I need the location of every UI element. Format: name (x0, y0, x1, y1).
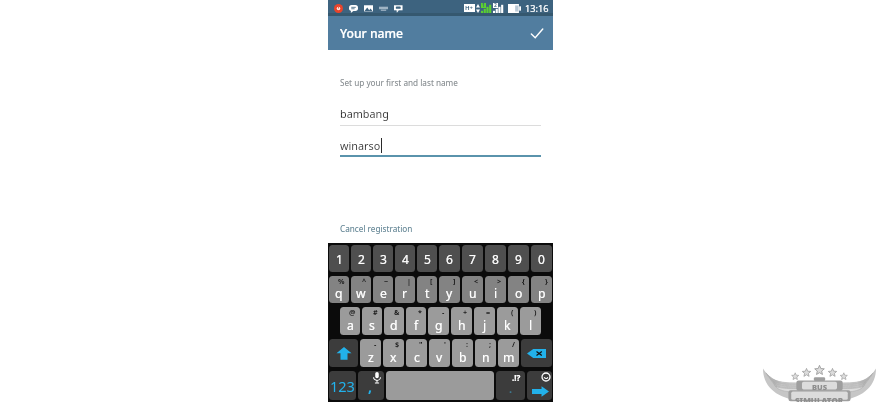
button[interactable]: 4 (395, 245, 415, 272)
button[interactable]: : (452, 339, 473, 367)
staticText: 13:16 (525, 2, 549, 15)
staticText: . (509, 381, 513, 396)
staticText: w (356, 285, 366, 302)
button[interactable]: Cancel registration (340, 223, 413, 234)
button[interactable]: Enter (527, 371, 552, 400)
staticText: = (486, 307, 491, 317)
staticText: Set up your first and last name (340, 77, 458, 88)
button[interactable]: 6 (439, 245, 460, 272)
button[interactable]: [ (417, 276, 437, 303)
staticText: ) (534, 307, 537, 317)
staticText: v (436, 349, 443, 366)
button[interactable]: < (462, 276, 483, 303)
staticText: 7 (469, 251, 476, 267)
button[interactable]: ] (439, 276, 460, 303)
staticText: x (390, 349, 397, 366)
button[interactable]: ^ (351, 276, 371, 303)
button[interactable]: 9 (508, 245, 529, 272)
button[interactable]: ; (475, 339, 496, 367)
button[interactable]: @ (340, 307, 360, 335)
staticText: ^ (362, 276, 367, 286)
staticText: [ (430, 276, 433, 286)
button[interactable]: .!? (496, 371, 525, 400)
staticText: " (419, 339, 423, 349)
staticText: l (529, 317, 533, 334)
staticText: r (402, 285, 408, 302)
staticText: i (494, 285, 498, 302)
staticText: o (515, 285, 523, 302)
button[interactable]: " (406, 339, 427, 367)
button[interactable]: 7 (462, 245, 483, 272)
staticText: 6 (446, 251, 453, 267)
button[interactable]: - (360, 339, 381, 367)
staticText: 2 (494, 2, 497, 9)
staticText: # (373, 307, 378, 317)
button[interactable]: / (498, 339, 519, 367)
button[interactable]: Voice input (358, 371, 384, 400)
staticText: < (474, 276, 479, 286)
button[interactable]: = (474, 307, 495, 335)
staticText: $ (395, 339, 400, 349)
button[interactable]: Backspace (521, 339, 552, 367)
button[interactable]: & (384, 307, 404, 335)
staticText: - (442, 307, 445, 317)
button[interactable]: Done (525, 21, 549, 45)
staticText: bambang (340, 106, 389, 121)
staticText: Cancel registration (340, 223, 413, 234)
button[interactable]: 0 (531, 245, 552, 272)
staticText: BUS (812, 382, 828, 392)
staticText: + (463, 307, 468, 317)
button[interactable]: ) (520, 307, 541, 335)
button[interactable]: - (428, 307, 449, 335)
button[interactable]: | (395, 276, 415, 303)
staticText: a (347, 317, 354, 334)
button[interactable]: } (531, 276, 552, 303)
staticText: & (394, 307, 400, 317)
staticText: / (512, 339, 515, 349)
staticText: % (338, 276, 345, 286)
button[interactable]: Space (386, 371, 494, 400)
staticText: e (380, 285, 387, 302)
staticText: c (414, 349, 420, 366)
staticText: , (368, 377, 372, 396)
staticText: * (418, 307, 422, 317)
button[interactable]: Shift (329, 339, 358, 367)
staticText: > (497, 276, 502, 286)
button[interactable]: ( (497, 307, 518, 335)
button[interactable]: 5 (417, 245, 437, 272)
staticText: s (369, 317, 375, 334)
staticText: ( (511, 307, 514, 317)
staticText: winarso (340, 138, 381, 153)
button[interactable]: 123 (329, 371, 356, 400)
staticText: b (459, 349, 467, 366)
button[interactable]: ~ (373, 276, 393, 303)
staticText: j (483, 317, 487, 334)
staticText: - (374, 339, 377, 349)
button[interactable]: 1 (329, 245, 349, 272)
button[interactable]: # (362, 307, 382, 335)
staticText: 1 (336, 251, 343, 267)
button[interactable]: 3 (373, 245, 393, 272)
staticText: : (466, 339, 469, 349)
button[interactable]: % (329, 276, 349, 303)
button[interactable]: 8 (485, 245, 506, 272)
button[interactable]: > (485, 276, 506, 303)
staticText: .!? (512, 372, 521, 383)
staticText: q (335, 285, 343, 302)
button[interactable]: 2 (351, 245, 371, 272)
staticText: t (425, 285, 430, 302)
button[interactable]: * (406, 307, 426, 335)
staticText: H+ (465, 4, 474, 12)
staticText: 1 (482, 2, 485, 9)
button[interactable]: { (508, 276, 529, 303)
staticText: ~ (384, 276, 389, 286)
staticText: Your name (340, 25, 404, 42)
staticText: m (503, 349, 515, 366)
button[interactable]: $ (383, 339, 404, 367)
staticText: ; (489, 339, 492, 349)
button[interactable]: + (451, 307, 472, 335)
staticText: 2 (358, 251, 365, 267)
staticText: n (482, 349, 490, 366)
staticText: @ (349, 307, 356, 317)
button[interactable]: ' (429, 339, 450, 367)
